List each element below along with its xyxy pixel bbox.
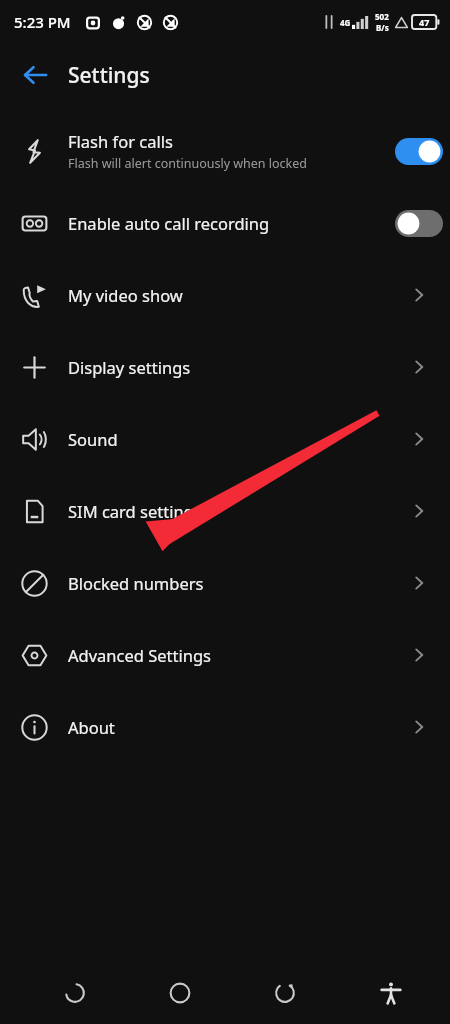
button[interactable]: Toggle on — [395, 138, 443, 165]
button[interactable]: Sound — [0, 403, 450, 475]
button[interactable]: Accessibility — [338, 962, 444, 1024]
staticText: Blocked numbers — [68, 572, 204, 594]
button[interactable]: SIM card settings — [0, 475, 450, 547]
staticText: 502 — [375, 11, 389, 22]
button[interactable]: Back — [22, 962, 127, 1024]
button[interactable]: About — [0, 691, 450, 763]
button[interactable]: Recents — [232, 962, 338, 1024]
staticText: 4G — [340, 17, 351, 28]
button[interactable]: Advanced Settings — [0, 619, 450, 691]
button[interactable]: Flash for calls — [0, 115, 450, 187]
staticText: About — [68, 716, 115, 738]
staticText: Display settings — [68, 356, 191, 378]
staticText: Flash will alert continuously when locke… — [68, 155, 308, 172]
staticText: My video show — [68, 284, 183, 306]
staticText: SIM card settings — [68, 500, 202, 522]
button[interactable]: Blocked numbers — [0, 547, 450, 619]
staticText: 5:23 PM — [14, 12, 71, 32]
button[interactable]: My video show — [0, 259, 450, 331]
button[interactable]: Home — [127, 962, 232, 1024]
staticText: Advanced Settings — [68, 644, 211, 666]
staticText: Settings — [68, 61, 150, 90]
button[interactable]: Back — [14, 54, 56, 96]
staticText: 47 — [419, 16, 430, 28]
button[interactable]: Toggle off — [395, 210, 443, 237]
button[interactable]: Display settings — [0, 331, 450, 403]
staticText: Flash for calls — [68, 130, 173, 152]
staticText: Enable auto call recording — [68, 212, 270, 234]
staticText: Sound — [68, 428, 118, 450]
button[interactable]: Enable auto call recording — [0, 187, 450, 259]
staticText: B/s — [376, 22, 389, 33]
